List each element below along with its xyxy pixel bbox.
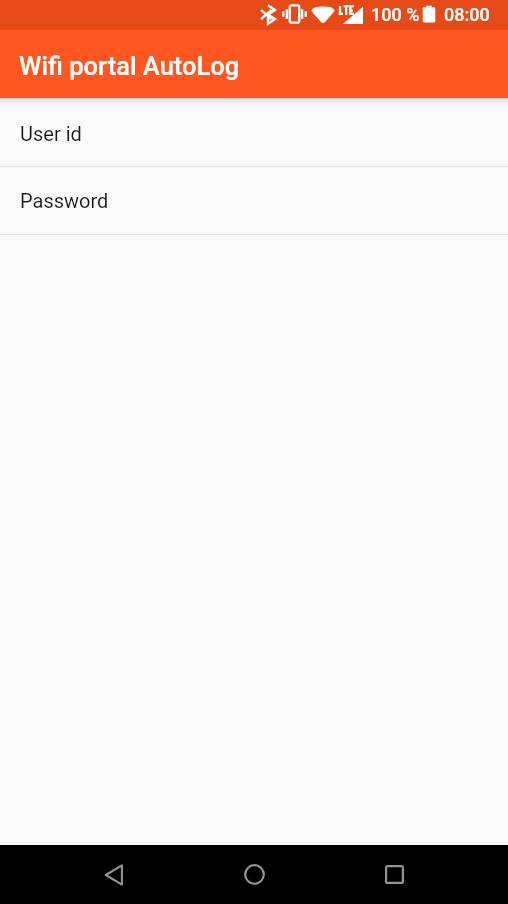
staticText: User id [20, 122, 82, 145]
staticText: 08:00 [444, 4, 490, 25]
button[interactable]: Back [74, 845, 153, 904]
staticText: Wifi portal AutoLog [19, 51, 240, 81]
staticText: Password [20, 189, 109, 212]
button[interactable]: Password [0, 167, 508, 235]
button[interactable]: Home [215, 845, 294, 904]
button[interactable]: Recents [355, 845, 434, 904]
button[interactable]: User id [0, 98, 508, 167]
staticText: 100 % [371, 4, 420, 25]
